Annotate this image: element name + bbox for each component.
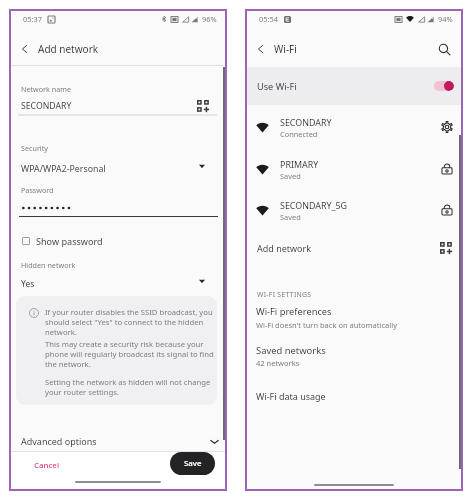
button[interactable]: Use Wi-Fi	[257, 67, 454, 105]
staticText: network.	[45, 327, 77, 337]
staticText: Use Wi-Fi	[257, 80, 434, 93]
staticText: Wi-Fi preferences	[256, 305, 332, 318]
staticText: SECONDARY	[280, 116, 332, 128]
staticText: Add network	[38, 42, 99, 56]
button[interactable]: Scan QR code	[195, 98, 212, 115]
staticText: Network name	[21, 84, 72, 94]
button[interactable]: Wi-Fi data usage	[256, 388, 453, 404]
staticText: your router settings.	[45, 387, 119, 397]
staticText: Save	[184, 458, 202, 469]
staticText: Wi-Fi data usage	[256, 390, 326, 402]
staticText: Add network	[257, 242, 439, 254]
staticText: Hidden network	[21, 260, 76, 270]
button[interactable]: Advanced options	[21, 430, 221, 452]
button[interactable]: SECONDARY_5G	[256, 193, 454, 227]
button[interactable]: Show password	[22, 234, 124, 247]
staticText: This may create a security risk because …	[45, 339, 204, 349]
button[interactable]: Save	[170, 452, 215, 475]
staticText: Advanced options	[21, 435, 207, 447]
button[interactable]: Add network	[257, 236, 454, 260]
staticText: Saved networks	[256, 344, 326, 357]
button[interactable]: Back	[251, 40, 269, 58]
staticText: 42 networks	[256, 358, 300, 368]
staticText: Security	[21, 143, 48, 153]
staticText: 96%	[202, 14, 217, 24]
staticText: Cancel	[34, 460, 60, 471]
button[interactable]: SECONDARY	[256, 110, 454, 144]
button[interactable]: Select hidden network	[191, 271, 212, 292]
staticText: phone will regularly broadcast its signa…	[45, 349, 214, 359]
staticText: Yes	[21, 278, 35, 290]
button[interactable]: Saved networks	[256, 342, 453, 370]
button[interactable]: Cancel	[26, 454, 68, 477]
staticText: Saved	[280, 212, 301, 222]
staticText: SECONDARY	[21, 100, 72, 112]
staticText: WI-FI SETTINGS	[257, 290, 312, 299]
staticText: Connected	[280, 129, 318, 139]
staticText: should select "Yes" to connect to the hi…	[45, 317, 204, 327]
staticText: Wi-Fi	[274, 42, 434, 56]
staticText: SECONDARY_5G	[280, 199, 348, 211]
staticText: PRIMARY	[280, 158, 319, 170]
button[interactable]: Back	[15, 40, 33, 58]
staticText: 05:37	[23, 14, 42, 24]
staticText: Setting the network as hidden will not c…	[45, 377, 211, 387]
button[interactable]: Search	[434, 39, 454, 59]
button[interactable]: Wi-Fi preferences	[256, 303, 453, 332]
staticText: Wi-Fi doesn't turn back on automatically	[256, 320, 397, 330]
staticText: the network.	[45, 359, 91, 369]
staticText: Password	[21, 185, 54, 195]
staticText: 05:54	[259, 14, 278, 24]
staticText: Saved	[280, 171, 301, 181]
button[interactable]: Select security type	[191, 156, 212, 177]
staticText: If your router disables the SSID broadca…	[45, 307, 213, 317]
staticText: Show password	[36, 235, 103, 247]
staticText: WPA/WPA2-Personal	[21, 163, 106, 175]
staticText: 94%	[438, 14, 453, 24]
button[interactable]: PRIMARY	[256, 152, 454, 186]
